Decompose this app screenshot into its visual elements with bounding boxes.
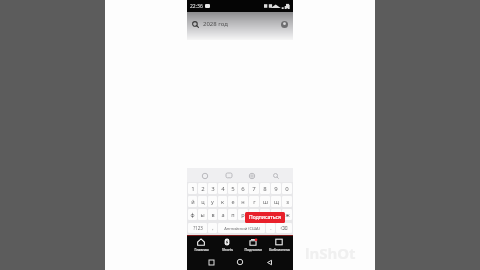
button[interactable]: , [208,223,217,233]
staticText: г [253,198,256,205]
staticText: к [221,198,224,205]
staticText: 3 [211,185,215,193]
button[interactable]: Английский (США) [218,223,265,233]
button[interactable]: 0 [282,183,292,194]
button[interactable]: Shorts [215,238,239,252]
staticText: 22:36 [190,3,203,10]
button[interactable]: Keyboard tool 2 [223,170,234,181]
button[interactable]: 2028 год [192,15,288,33]
button[interactable]: у [208,196,217,207]
button[interactable]: щ [271,196,281,207]
button[interactable]: з [282,196,292,207]
staticText: 1 [191,185,195,193]
staticText: , [212,225,214,232]
button[interactable]: ш [260,196,270,207]
button[interactable]: 9 [271,183,281,194]
staticText: ⌫ [280,225,288,231]
button[interactable]: е [228,196,237,207]
staticText: в [211,211,215,218]
button[interactable]: Keyboard tool 1 [199,170,210,181]
staticText: Подписки [244,247,262,252]
staticText: Shorts [222,247,233,252]
staticText: . [270,225,272,232]
staticText: ш [263,198,268,205]
button[interactable]: о [249,209,259,220]
staticText: 2 [201,185,205,193]
staticText: lnShOt [305,243,356,263]
staticText: л [263,211,267,218]
button[interactable]: Keyboard tool 4 [270,170,281,181]
button[interactable]: а [218,209,227,220]
staticText: й [191,198,195,205]
staticText: о [252,211,256,218]
button[interactable]: 6 [238,183,248,194]
button[interactable]: 1 [188,183,197,194]
staticText: 6 [241,185,245,193]
button[interactable]: г [249,196,259,207]
button[interactable]: Home [235,257,245,267]
button[interactable]: Подписки [241,238,265,252]
staticText: р [241,211,245,218]
button[interactable]: 3 [208,183,217,194]
staticText: 8 [263,185,267,193]
staticText: ы [200,211,205,218]
staticText: п [231,211,235,218]
staticText: з [286,198,289,205]
staticText: у [211,198,214,205]
button[interactable]: ⌫ [276,223,292,233]
staticText: ?123 [193,225,203,231]
button[interactable]: й [188,196,197,207]
staticText: 5 [231,185,235,193]
button[interactable]: 7 [249,183,259,194]
staticText: 4 [221,185,225,193]
staticText: е [231,198,235,205]
button[interactable]: ж [282,209,292,220]
staticText: 7 [252,185,256,193]
staticText: д [274,211,278,218]
staticText: 0 [285,185,289,193]
button[interactable]: Recents [206,257,216,267]
button[interactable]: ?123 [188,223,207,233]
button[interactable]: Библиотека [267,238,291,252]
button[interactable]: к [218,196,227,207]
button[interactable]: Keyboard tool 3 [246,170,257,181]
button[interactable]: ц [198,196,207,207]
staticText: 2028 год [203,20,229,28]
staticText: ж [285,211,290,218]
button[interactable]: Account [280,20,288,28]
staticText: Подписаться [249,214,281,221]
button[interactable]: р [238,209,248,220]
button[interactable]: 4 [218,183,227,194]
button[interactable]: Подписаться [245,212,285,223]
staticText: 9 [274,185,278,193]
staticText: а [221,211,225,218]
button[interactable]: . [266,223,275,233]
button[interactable]: Главная [189,238,213,252]
staticText: Английский (США) [224,226,260,231]
button[interactable]: 2 [198,183,207,194]
staticText: щ [274,198,279,205]
button[interactable]: л [260,209,270,220]
staticText: Главная [194,247,209,252]
button[interactable]: 8 [260,183,270,194]
button[interactable]: п [228,209,237,220]
button[interactable]: 5 [228,183,237,194]
staticText: Библиотека [269,247,290,252]
staticText: н [241,198,245,205]
button[interactable]: в [208,209,217,220]
button[interactable]: д [271,209,281,220]
staticText: ф [190,211,195,218]
button[interactable]: Back [264,257,274,267]
button[interactable]: ы [198,209,207,220]
button[interactable]: н [238,196,248,207]
staticText: ц [201,198,205,205]
button[interactable]: ф [188,209,197,220]
